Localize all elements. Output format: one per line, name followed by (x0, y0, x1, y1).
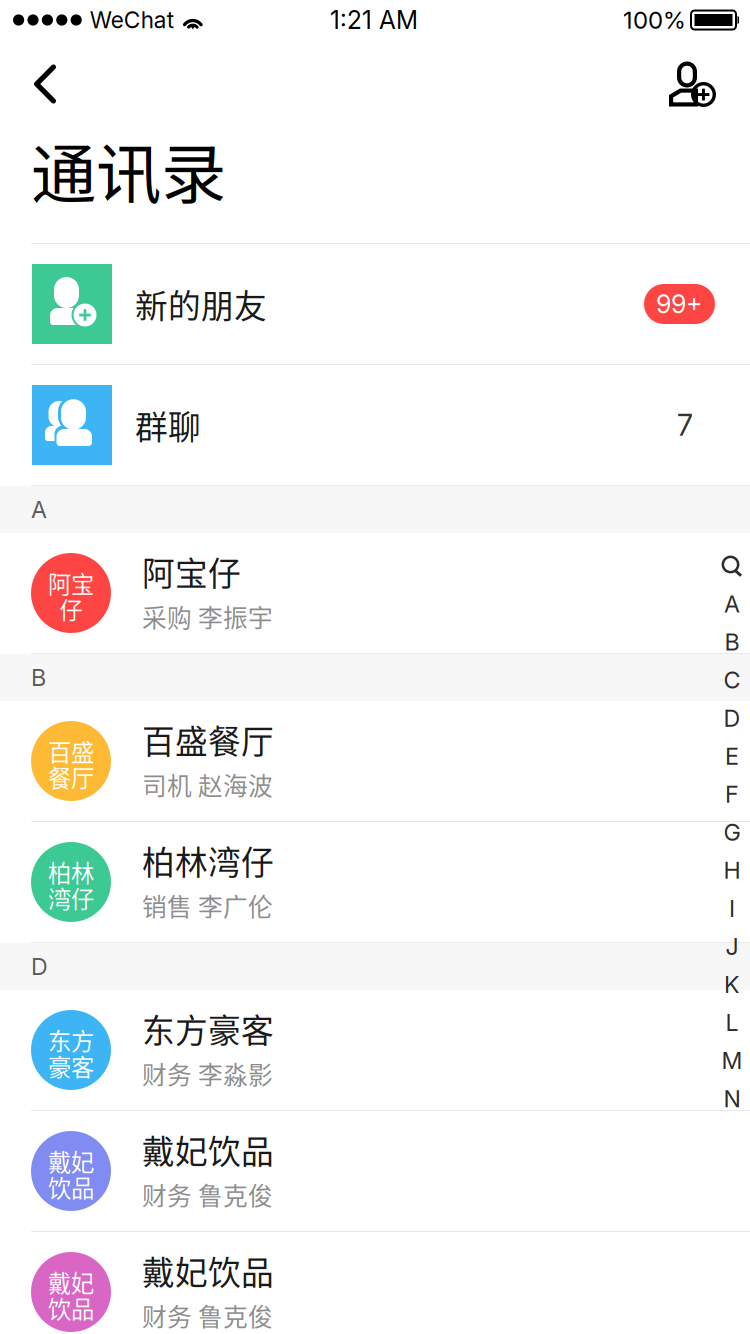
button[interactable]: L (714, 1004, 750, 1042)
button[interactable]: J (714, 927, 750, 965)
staticText: 豪客 (48, 1049, 94, 1083)
button[interactable]: A (714, 585, 750, 623)
staticText: 99+ (656, 289, 703, 319)
staticText: B (31, 663, 46, 692)
staticText: 财务 李淼影 (142, 1056, 273, 1091)
staticText: WeChat (90, 6, 174, 34)
button[interactable]: H (714, 851, 750, 889)
staticText: 100% (623, 5, 686, 34)
staticText: I (729, 894, 735, 922)
button[interactable]: 戴妃 (0, 1232, 750, 1334)
staticText: H (723, 856, 740, 884)
staticText: 阿宝 (48, 566, 94, 600)
button[interactable]: 阿宝 (0, 533, 750, 654)
button[interactable]: Search (714, 548, 750, 585)
staticText: 餐厅 (48, 760, 94, 794)
button[interactable]: M (714, 1042, 750, 1080)
staticText: A (724, 590, 740, 618)
staticText: B (724, 628, 739, 656)
button[interactable]: 百盛 (0, 701, 750, 822)
button[interactable]: E (714, 737, 750, 775)
staticText: 百盛餐厅 (142, 716, 274, 763)
staticText: L (725, 1008, 738, 1037)
button[interactable]: B (714, 623, 750, 661)
staticText: 东方豪客 (142, 1005, 274, 1052)
staticText: A (31, 495, 47, 524)
staticText: E (725, 742, 739, 770)
staticText: 东方 (48, 1023, 94, 1057)
staticText: M (721, 1046, 742, 1075)
staticText: D (723, 704, 740, 732)
button[interactable]: Back (0, 40, 110, 128)
button[interactable]: Add friend (630, 40, 750, 128)
button[interactable]: 戴妃 (0, 1111, 750, 1232)
staticText: 采购 李振宇 (142, 599, 273, 634)
staticText: 仔 (59, 592, 82, 626)
button[interactable]: C (714, 661, 750, 699)
staticText: 财务 鲁克俊 (142, 1177, 273, 1212)
staticText: 群聊 (135, 401, 201, 449)
staticText: 柏林 (48, 855, 94, 889)
staticText: 新的朋友 (135, 280, 267, 328)
staticText: 饮品 (48, 1291, 94, 1325)
staticText: 1:21 AM (330, 5, 418, 35)
staticText: K (724, 970, 740, 999)
staticText: 销售 李广伦 (142, 888, 273, 923)
button[interactable]: 群聊 (0, 365, 750, 486)
staticText: 戴妃 (48, 1144, 94, 1178)
staticText: 7 (677, 407, 693, 443)
button[interactable]: K (714, 965, 750, 1003)
button[interactable]: 新的朋友 (0, 244, 750, 365)
staticText: F (725, 780, 739, 808)
staticText: N (723, 1085, 740, 1113)
button[interactable]: F (714, 775, 750, 813)
staticText: 阿宝仔 (142, 548, 241, 595)
staticText: 戴妃 (48, 1265, 94, 1299)
staticText: 百盛 (48, 734, 94, 768)
staticText: 戴妃饮品 (142, 1126, 274, 1173)
button[interactable]: G (714, 813, 750, 851)
button[interactable]: 东方 (0, 990, 750, 1111)
staticText: 司机 赵海波 (142, 767, 273, 802)
staticText: 饮品 (48, 1170, 94, 1204)
staticText: G (723, 818, 740, 846)
button[interactable]: 柏林 (0, 822, 750, 943)
staticText: 财务 鲁克俊 (142, 1298, 273, 1333)
staticText: 戴妃饮品 (142, 1247, 274, 1294)
button[interactable]: N (714, 1080, 750, 1118)
staticText: C (723, 666, 740, 694)
staticText: D (31, 952, 48, 981)
staticText: 柏林湾仔 (142, 837, 274, 884)
staticText: J (725, 932, 738, 961)
staticText: 通讯录 (31, 122, 226, 217)
button[interactable]: D (714, 699, 750, 737)
button[interactable]: I (714, 889, 750, 927)
staticText: 湾仔 (48, 881, 94, 915)
